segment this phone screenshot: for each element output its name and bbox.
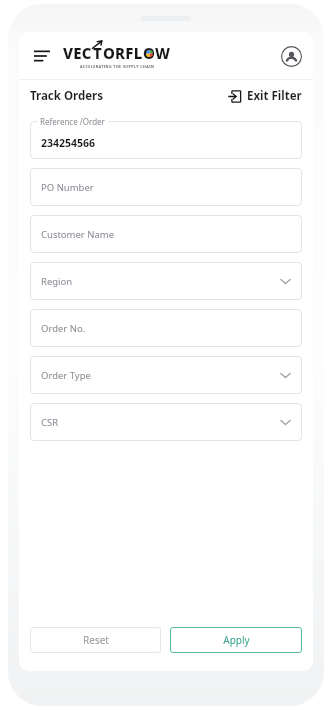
staticText: T [93,43,102,63]
button[interactable]: Reference /Order [30,121,302,159]
button[interactable]: Exit Filter [228,88,302,104]
staticText: 234254566 [41,136,96,150]
staticText: ACCELERATING THE SUPPLY CHAIN [80,64,155,69]
staticText: VEC [63,43,92,63]
button[interactable]: PO Number [30,168,302,206]
staticText: Reset [83,633,109,647]
button[interactable]: Reset [30,627,161,653]
button[interactable]: CSR [30,403,302,441]
staticText: Order Type [41,369,91,382]
button[interactable]: Menu [30,44,54,68]
staticText: Region [41,275,73,288]
staticText: Customer Name [41,228,115,241]
button[interactable]: Apply [170,627,302,653]
button[interactable]: Order No. [30,309,302,347]
staticText: Track Orders [30,88,103,104]
button[interactable]: Order Type [30,356,302,394]
staticText: Exit Filter [247,88,302,104]
staticText: CSR [41,416,59,429]
button[interactable]: Customer Name [30,215,302,253]
staticText: W [155,43,171,63]
staticText: Order No. [41,322,86,335]
staticText: PO Number [41,181,94,194]
staticText: Reference /Order [40,116,105,126]
button[interactable]: Account [280,45,302,67]
staticText: Apply [223,633,250,647]
staticText: O [143,43,155,63]
staticText: ORFL [103,43,143,63]
button[interactable]: Region [30,262,302,300]
